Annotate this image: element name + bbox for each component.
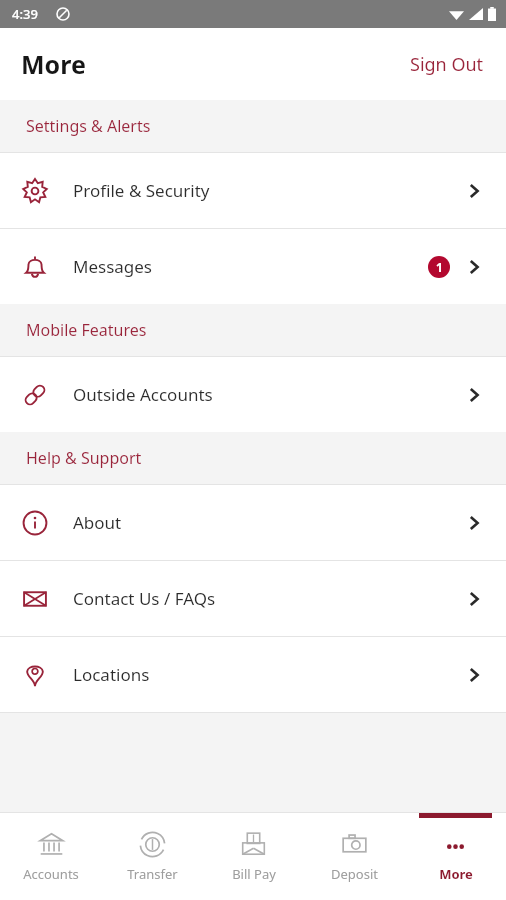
staticText: About bbox=[73, 511, 464, 534]
staticText: Locations bbox=[73, 663, 464, 686]
button[interactable]: Deposit bbox=[304, 813, 405, 900]
button[interactable]: About bbox=[0, 485, 506, 560]
staticText: More bbox=[439, 865, 473, 883]
staticText: Transfer bbox=[127, 865, 178, 883]
staticText: Settings & Alerts bbox=[26, 115, 151, 137]
button[interactable]: Transfer bbox=[102, 813, 203, 900]
staticText: Mobile Features bbox=[26, 319, 147, 341]
button[interactable]: Sign Out bbox=[388, 40, 506, 89]
button[interactable]: Profile & Security bbox=[0, 153, 506, 228]
button[interactable]: Accounts bbox=[0, 813, 102, 900]
staticText: Profile & Security bbox=[73, 179, 464, 202]
staticText: Deposit bbox=[331, 865, 378, 883]
staticText: 4:39 bbox=[12, 5, 38, 23]
staticText: Messages bbox=[73, 255, 428, 278]
button[interactable]: Contact Us / FAQs bbox=[0, 561, 506, 636]
staticText: Sign Out bbox=[410, 52, 484, 77]
button[interactable]: More bbox=[405, 813, 506, 900]
staticText: Outside Accounts bbox=[73, 383, 464, 406]
button[interactable]: Locations bbox=[0, 637, 506, 712]
staticText: Accounts bbox=[23, 865, 79, 883]
button[interactable]: Messages bbox=[0, 229, 506, 304]
button[interactable]: Outside Accounts bbox=[0, 357, 506, 432]
staticText: 1 bbox=[436, 259, 443, 275]
staticText: Bill Pay bbox=[232, 865, 276, 883]
staticText: Contact Us / FAQs bbox=[73, 587, 464, 610]
staticText: Help & Support bbox=[26, 447, 142, 469]
staticText: More bbox=[21, 47, 86, 81]
button[interactable]: Bill Pay bbox=[203, 813, 304, 900]
